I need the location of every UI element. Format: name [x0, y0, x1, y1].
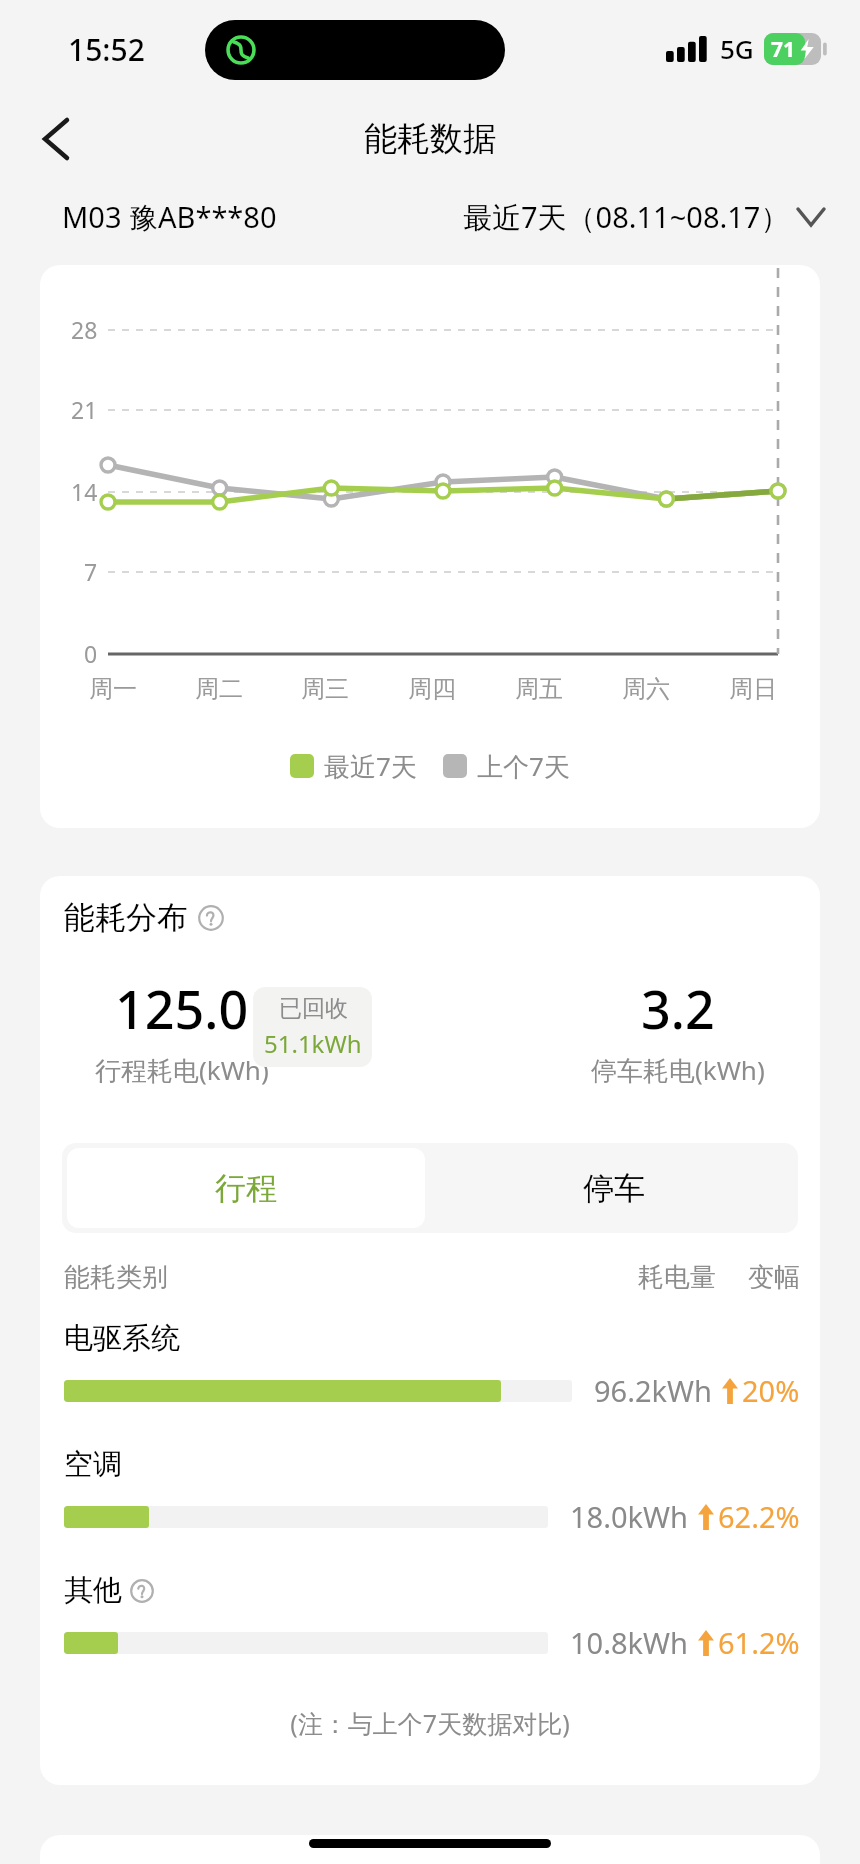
staticText: 变幅	[748, 1261, 800, 1294]
staticText: 71	[771, 35, 796, 64]
button[interactable]: Help	[130, 1579, 154, 1603]
staticText: 7	[84, 556, 98, 587]
staticText: 能耗类别	[64, 1261, 168, 1294]
staticText: 周三	[301, 674, 349, 704]
staticText: 周日	[729, 674, 777, 704]
staticText: 18.0kWh	[570, 1497, 688, 1536]
staticText: 电驱系统	[64, 1320, 180, 1357]
staticText: 96.2kWh	[594, 1371, 712, 1410]
button[interactable]: 最近7天（08.11~08.17）	[463, 197, 824, 237]
staticText: 20%	[742, 1371, 800, 1410]
staticText: 62.2%	[718, 1497, 800, 1536]
staticText: 125.0	[115, 973, 249, 1044]
staticText: 其他	[64, 1572, 122, 1609]
staticText: 15:52	[68, 29, 145, 70]
staticText: 10.8kWh	[570, 1623, 688, 1662]
staticText: 行程耗电(kWh)	[95, 1052, 269, 1088]
staticText: 51.1kWh	[264, 1027, 362, 1060]
staticText: 能耗数据	[364, 118, 496, 160]
staticText: (注：与上个7天数据对比)	[290, 1706, 570, 1740]
staticText: 14	[71, 476, 98, 507]
staticText: 最近7天（08.11~08.17）	[463, 197, 790, 237]
staticText: 能耗分布	[64, 898, 188, 937]
staticText: 5G	[720, 31, 754, 66]
button[interactable]: 停车	[430, 1143, 798, 1233]
staticText: 最近7天	[324, 748, 417, 784]
staticText: 0	[84, 638, 98, 669]
staticText: 周四	[408, 674, 456, 704]
staticText: 3.2	[641, 973, 715, 1044]
staticText: 空调	[64, 1446, 122, 1483]
staticText: 周二	[195, 674, 243, 704]
button[interactable]: 行程	[67, 1148, 425, 1228]
staticText: 行程	[215, 1169, 277, 1208]
staticText: 已回收	[279, 994, 348, 1023]
staticText: 21	[71, 394, 98, 425]
staticText: M03 豫AB***80	[62, 197, 277, 237]
staticText: 61.2%	[718, 1623, 800, 1662]
staticText: 上个7天	[477, 748, 570, 784]
button[interactable]: Help	[198, 905, 224, 931]
staticText: 耗电量	[638, 1261, 716, 1294]
staticText: 停车	[583, 1169, 645, 1208]
button[interactable]: Back	[24, 107, 88, 171]
staticText: 28	[71, 314, 98, 345]
staticText: 停车耗电(kWh)	[591, 1052, 765, 1088]
staticText: 周一	[89, 674, 137, 704]
staticText: 周六	[622, 674, 670, 704]
staticText: 周五	[515, 674, 563, 704]
